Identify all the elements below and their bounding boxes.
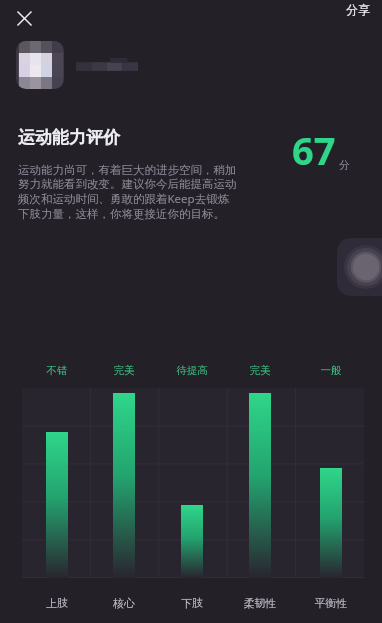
staticText: 平衡性 [305,596,357,610]
staticText: 一般 [307,364,355,377]
staticText: 完美 [236,364,284,377]
staticText: 下肢力量，这样，你将更接近你的目标。 [18,207,225,221]
staticText: 下肢 [166,596,218,610]
staticText: 67 [292,124,336,176]
button[interactable]: 分享 [334,0,382,22]
staticText: 待提高 [168,364,216,377]
staticText: 分享 [346,2,370,17]
staticText: 分 [339,158,350,172]
staticText: 努力就能看到改变。建议你今后能提高运动 [18,177,237,191]
staticText: 完美 [100,364,148,377]
button[interactable]: Profile photo [16,41,64,89]
staticText: 上肢 [31,596,83,610]
staticText: 不错 [33,364,81,377]
staticText: 核心 [98,596,150,610]
button[interactable]: Close [4,0,44,38]
staticText: 频次和运动时间、勇敢的跟着Keep去锻炼 [18,191,230,207]
staticText: 运动能力评价 [18,127,120,148]
staticText: 柔韧性 [234,596,286,610]
staticText: 运动能力尚可，有着巨大的进步空间，稍加 [18,163,237,177]
button[interactable]: Badge [337,238,382,296]
